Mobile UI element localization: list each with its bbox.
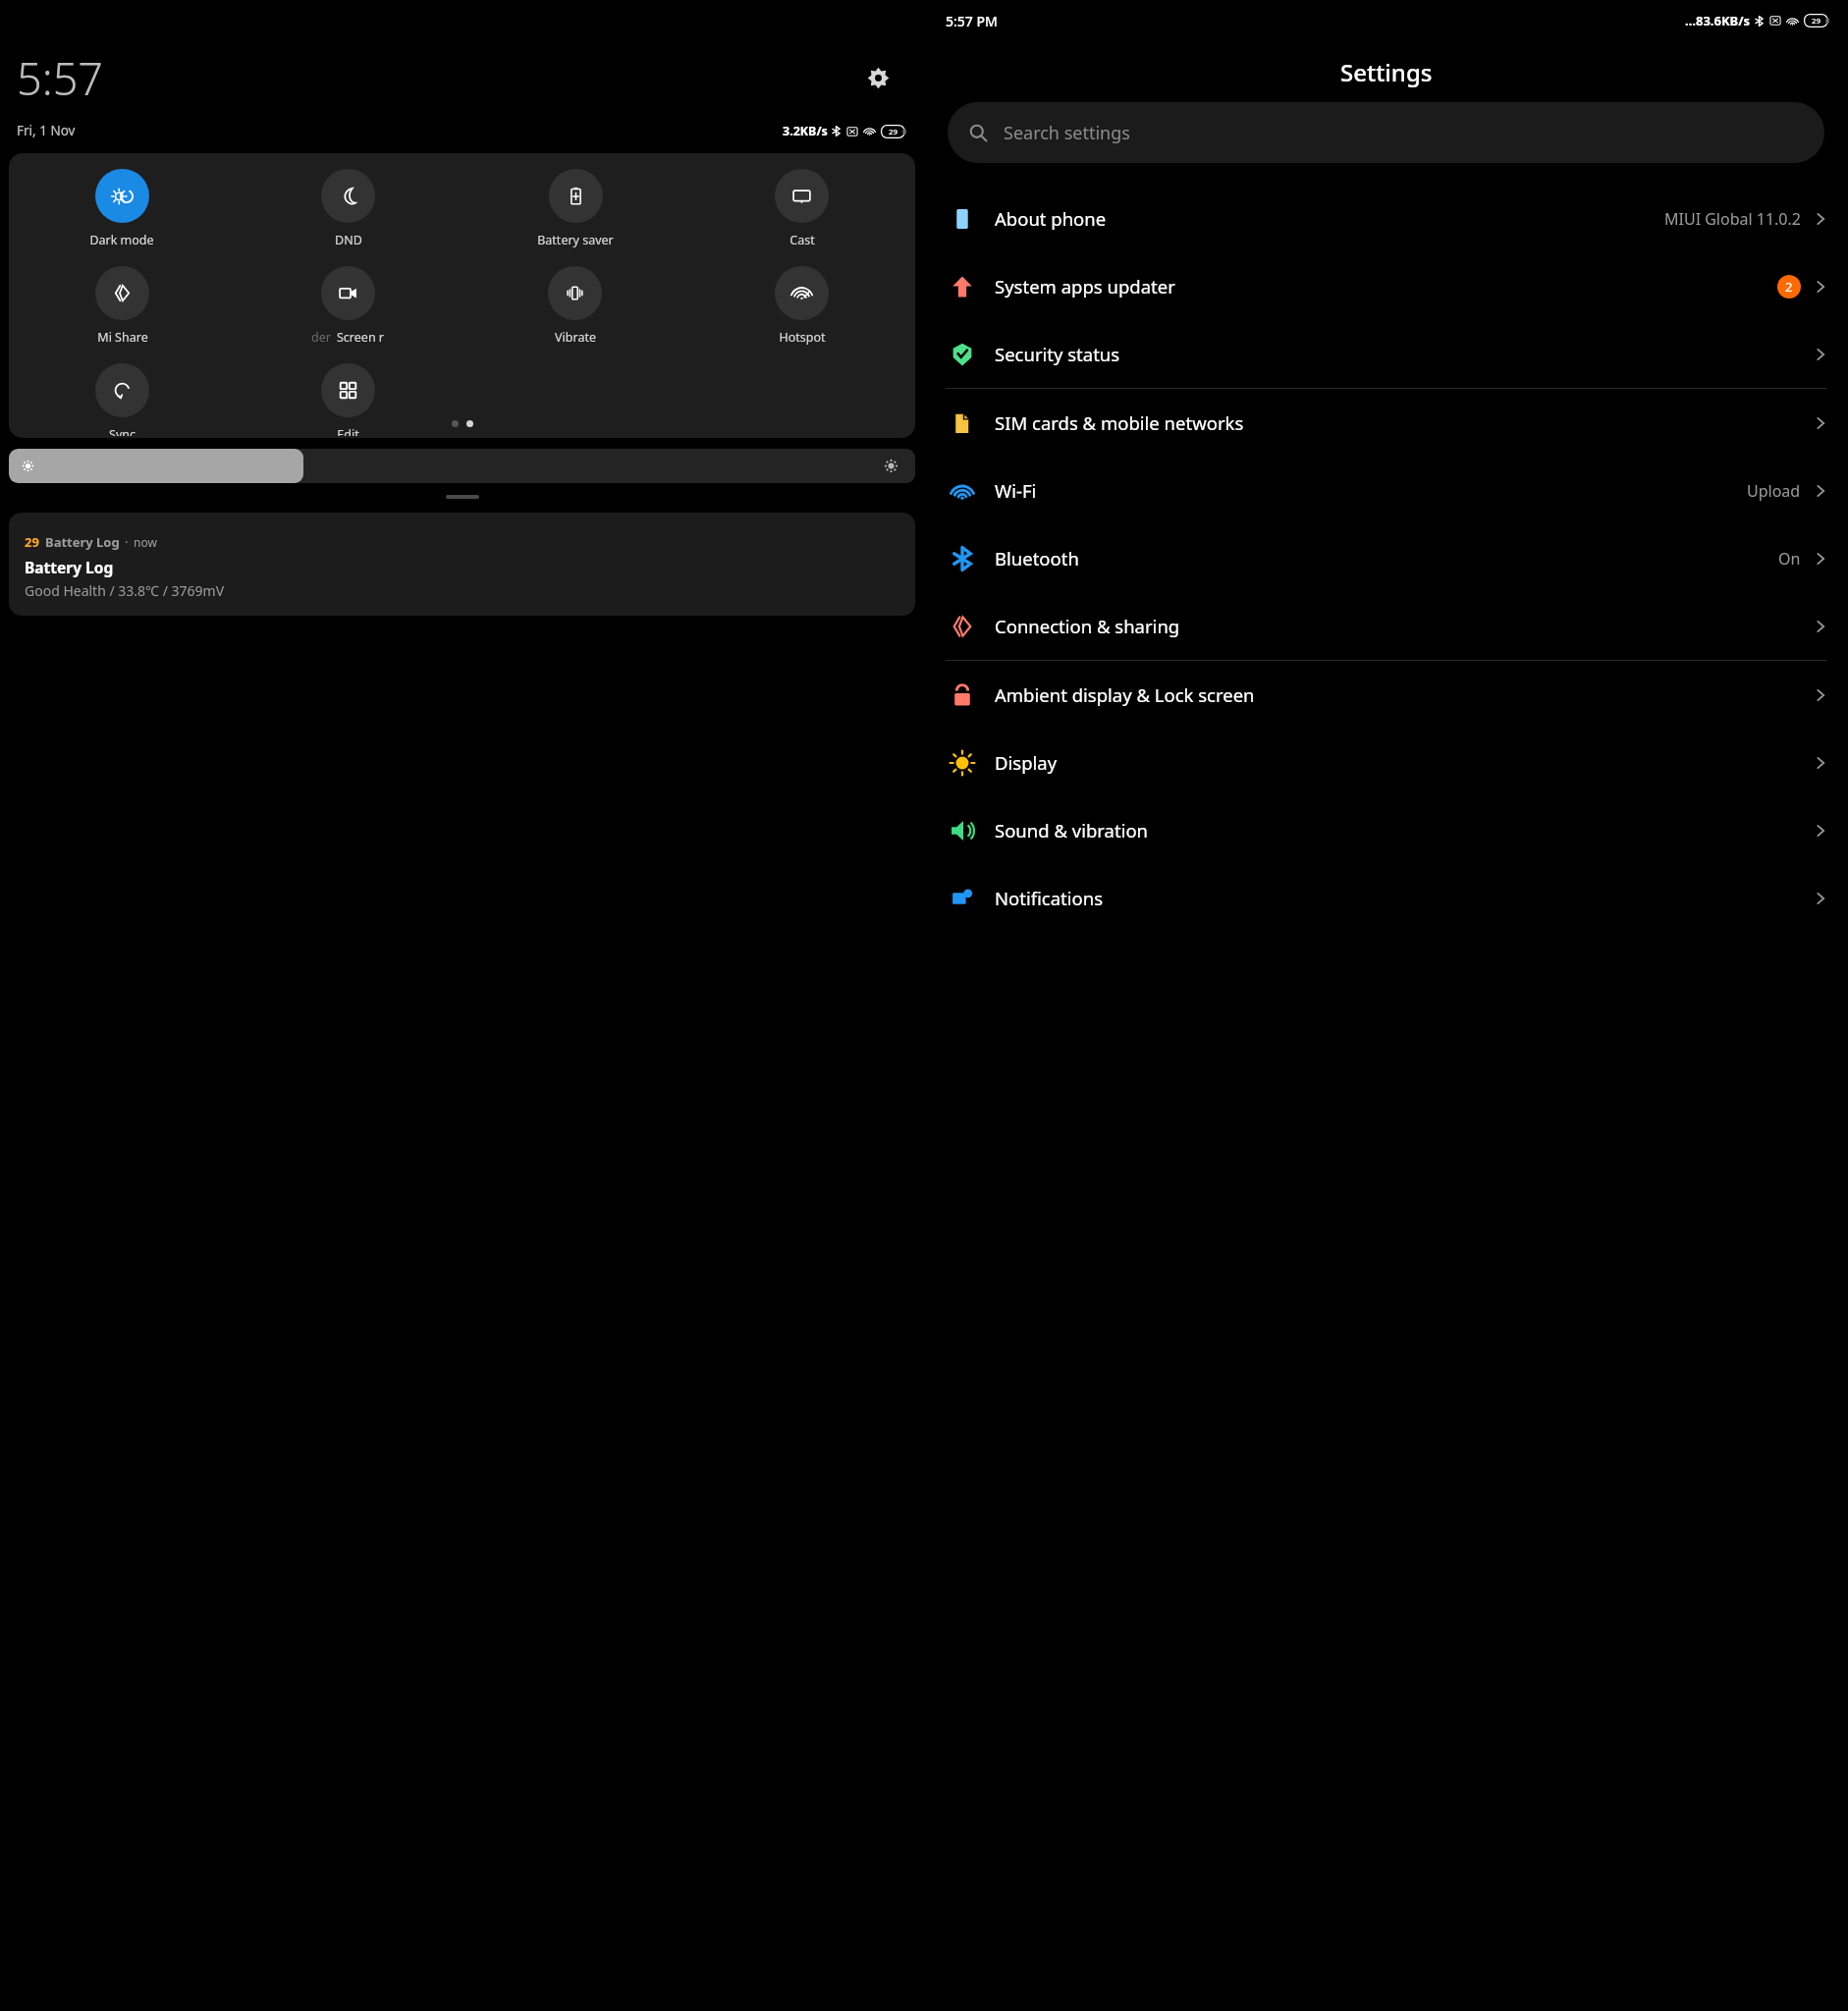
staticText: 2 bbox=[1785, 278, 1793, 296]
button[interactable]: Settings bbox=[861, 61, 895, 94]
button[interactable]: Dark mode bbox=[89, 167, 154, 250]
button[interactable]: About phone bbox=[924, 185, 1848, 252]
button[interactable]: System apps updater bbox=[924, 252, 1848, 320]
staticText: About phone bbox=[995, 206, 1107, 231]
button[interactable]: 29 bbox=[9, 513, 915, 616]
staticText: DND bbox=[335, 232, 362, 248]
staticText: Upload bbox=[1747, 480, 1801, 502]
button[interactable]: Brightness bbox=[9, 449, 915, 483]
staticText: Battery Log bbox=[45, 533, 120, 551]
staticText: SIM cards & mobile networks bbox=[995, 410, 1244, 435]
staticText: Search settings bbox=[1004, 121, 1130, 145]
staticText: Display bbox=[995, 750, 1058, 775]
staticText: 5:57 PM bbox=[946, 12, 998, 30]
button[interactable]: DND bbox=[321, 167, 375, 250]
staticText: Mi Share bbox=[97, 329, 148, 346]
button[interactable]: Cast bbox=[775, 167, 829, 250]
staticText: Wi-Fi bbox=[995, 478, 1037, 503]
button[interactable]: der bbox=[311, 264, 385, 348]
staticText: Notifications bbox=[995, 886, 1104, 910]
button[interactable]: Mi Share bbox=[95, 264, 149, 348]
staticText: 29 bbox=[25, 533, 39, 551]
staticText: Screen r bbox=[337, 329, 385, 346]
button[interactable]: Notifications bbox=[924, 864, 1848, 932]
button[interactable]: SIM cards & mobile networks bbox=[924, 389, 1848, 457]
staticText: now bbox=[134, 534, 157, 550]
button[interactable]: Sync bbox=[95, 361, 149, 438]
button[interactable]: Display bbox=[924, 729, 1848, 796]
staticText: MIUI Global 11.0.2 bbox=[1664, 208, 1801, 230]
button[interactable]: Security status bbox=[924, 320, 1848, 388]
staticText: · bbox=[125, 533, 129, 551]
staticText: Battery saver bbox=[537, 232, 614, 248]
staticText: 3.2KB/s bbox=[783, 123, 828, 139]
button[interactable]: Ambient display & Lock screen bbox=[924, 661, 1848, 729]
staticText: Connection & sharing bbox=[995, 614, 1180, 638]
staticText: Sound & vibration bbox=[995, 818, 1149, 842]
staticText: der bbox=[311, 329, 331, 346]
button[interactable]: Search settings bbox=[948, 102, 1824, 163]
button[interactable]: Vibrate bbox=[548, 264, 602, 348]
staticText: Sync bbox=[109, 426, 136, 436]
staticText: ...83.6KB/s bbox=[1685, 12, 1751, 29]
button[interactable]: Sound & vibration bbox=[924, 796, 1848, 864]
staticText: Bluetooth bbox=[995, 546, 1079, 571]
staticText: Cast bbox=[789, 232, 815, 248]
staticText: Edit bbox=[337, 426, 359, 436]
staticText: Battery Log bbox=[25, 557, 114, 577]
button[interactable]: Bluetooth bbox=[924, 524, 1848, 592]
button[interactable]: Hotspot bbox=[775, 264, 829, 348]
staticText: Vibrate bbox=[555, 329, 596, 346]
staticText: Settings bbox=[1340, 56, 1433, 88]
button[interactable]: Battery saver bbox=[537, 167, 614, 250]
staticText: Ambient display & Lock screen bbox=[995, 682, 1255, 707]
button[interactable]: Wi-Fi bbox=[924, 457, 1848, 524]
staticText: On bbox=[1778, 548, 1801, 570]
staticText: 29 bbox=[889, 127, 897, 137]
staticText: Hotspot bbox=[779, 329, 826, 346]
staticText: Good Health / 33.8℃ / 3769mV bbox=[25, 581, 225, 600]
staticText: Dark mode bbox=[89, 232, 154, 248]
staticText: 29 bbox=[1812, 16, 1821, 27]
staticText: 5:57 bbox=[17, 48, 104, 108]
button[interactable]: Edit bbox=[321, 361, 375, 438]
staticText: System apps updater bbox=[995, 274, 1175, 299]
staticText: Security status bbox=[995, 342, 1120, 366]
button[interactable]: Connection & sharing bbox=[924, 592, 1848, 660]
staticText: Fri, 1 Nov bbox=[17, 122, 76, 139]
